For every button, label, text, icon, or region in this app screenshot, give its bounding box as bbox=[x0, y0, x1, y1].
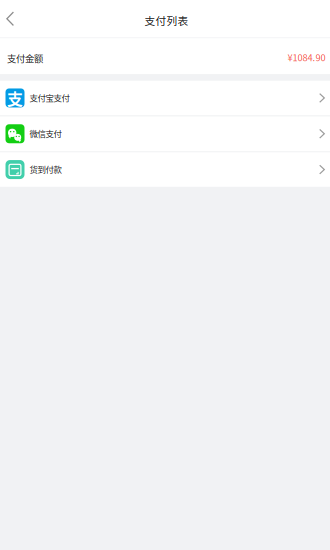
button[interactable]: 支 bbox=[0, 81, 330, 115]
staticText: 支付列表 bbox=[144, 12, 188, 28]
staticText: 支付宝支付 bbox=[29, 91, 69, 104]
button[interactable]: 货到付款 bbox=[0, 152, 330, 187]
staticText: 微信支付 bbox=[29, 127, 61, 139]
button[interactable]: 微信支付 bbox=[0, 116, 330, 151]
staticText: ¥1084.90 bbox=[287, 50, 325, 64]
button[interactable]: Back bbox=[0, 0, 24, 37]
staticText: 货到付款 bbox=[29, 163, 61, 175]
staticText: 支 bbox=[7, 87, 23, 110]
staticText: 支付金额 bbox=[7, 51, 43, 65]
